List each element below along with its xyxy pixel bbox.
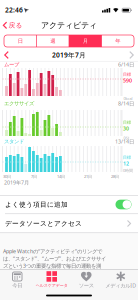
staticText: 30日	[3, 174, 11, 179]
staticText: 目標	[123, 155, 131, 160]
staticText: ソース	[79, 282, 94, 289]
button[interactable]: 週	[36, 35, 69, 47]
button[interactable]: 次の月	[126, 49, 136, 61]
staticText: 12	[123, 160, 129, 167]
staticText: 年	[115, 38, 120, 44]
staticText: 0分	[123, 135, 129, 141]
staticText: 0kcal	[123, 96, 132, 101]
staticText: 13/14日	[115, 138, 134, 145]
staticText: スタンド	[4, 138, 24, 145]
staticText: 14日	[57, 174, 65, 179]
staticText: 月	[83, 38, 88, 44]
staticText: 590	[123, 77, 132, 84]
staticText: アクティビティ	[41, 20, 97, 30]
staticText: ズという3つの重要な指標で毎日の運動を測	[3, 262, 101, 269]
staticText: 目標	[123, 120, 131, 125]
staticText: 28日	[111, 174, 119, 179]
button[interactable]: よく使う項目に追加	[115, 200, 131, 209]
staticText: 21日	[84, 174, 92, 179]
staticText: 8/14日	[118, 100, 134, 107]
button[interactable]: 今日	[0, 270, 34, 291]
staticText: 22:46	[5, 6, 23, 14]
button[interactable]: 前の月	[1, 49, 11, 61]
staticText: 目標	[123, 72, 131, 77]
staticText: 0時間	[123, 168, 133, 173]
staticText: エクササイズ	[4, 100, 34, 107]
staticText: データソースとアクセス	[5, 219, 82, 228]
staticText: ヘルスケアデータ	[36, 283, 68, 288]
staticText: 2019年7月	[4, 179, 29, 186]
staticText: Apple Watchの“アクティビティ”のリングで	[3, 248, 102, 255]
button[interactable]: 戻る	[2, 18, 28, 32]
staticText: 戻る	[8, 21, 22, 29]
staticText: よく使う項目に追加	[5, 200, 68, 209]
button[interactable]: ヘルスケアデータ	[34, 270, 69, 291]
button[interactable]: ソース	[69, 270, 103, 291]
staticText: 30	[123, 125, 129, 132]
staticText: 今日	[12, 282, 22, 289]
staticText: メディカルID	[105, 282, 136, 289]
staticText: は、“スタンド”、“ムーブ”、およびエクササイ	[3, 255, 106, 262]
button[interactable]: 日	[4, 35, 36, 47]
staticText: 7日	[31, 174, 37, 179]
staticText: 週	[50, 38, 55, 44]
button[interactable]: データソースとアクセス	[5, 214, 133, 232]
staticText: 2019年7月	[52, 51, 86, 59]
button[interactable]: メディカルID	[104, 270, 138, 291]
staticText: 日	[18, 38, 23, 44]
staticText: 6/14日	[118, 61, 134, 68]
button[interactable]: 月	[69, 35, 101, 47]
staticText: ムーブ	[4, 61, 19, 68]
button[interactable]: 年	[101, 35, 134, 47]
